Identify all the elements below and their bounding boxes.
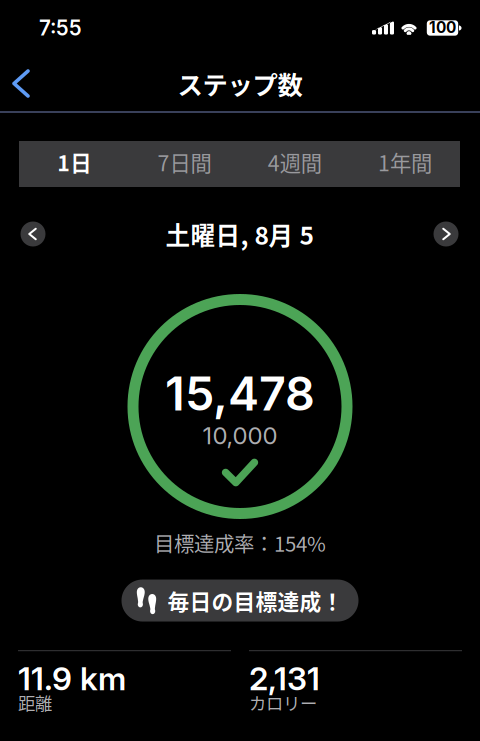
staticText: 7:55	[39, 15, 82, 40]
staticText: 4週間	[268, 147, 322, 177]
button[interactable]: 戻る	[0, 59, 47, 108]
button[interactable]: 次の日	[424, 212, 468, 256]
button[interactable]: 7日間	[129, 141, 239, 187]
staticText: 100	[429, 18, 456, 37]
staticText: 11.9 km	[18, 659, 126, 698]
staticText: 目標達成率：154%	[154, 528, 326, 557]
button[interactable]: 1日	[19, 141, 129, 187]
button[interactable]: 前の日	[11, 212, 55, 256]
staticText: 7日間	[157, 147, 211, 177]
staticText: 10,000	[202, 421, 277, 450]
staticText: ステップ数	[177, 65, 302, 102]
button[interactable]: 毎日の目標達成！	[121, 579, 358, 621]
staticText: 毎日の目標達成！	[167, 585, 343, 616]
staticText: 1年間	[378, 147, 432, 177]
staticText: 距離	[18, 690, 52, 715]
staticText: 土曜日, 8月 5	[165, 216, 313, 252]
staticText: 2,131	[249, 659, 320, 698]
staticText: 1日	[57, 147, 91, 177]
button[interactable]: 1年間	[350, 141, 460, 187]
staticText: 15,478	[165, 365, 315, 422]
staticText: カロリー	[249, 690, 317, 715]
button[interactable]: 4週間	[239, 141, 350, 187]
